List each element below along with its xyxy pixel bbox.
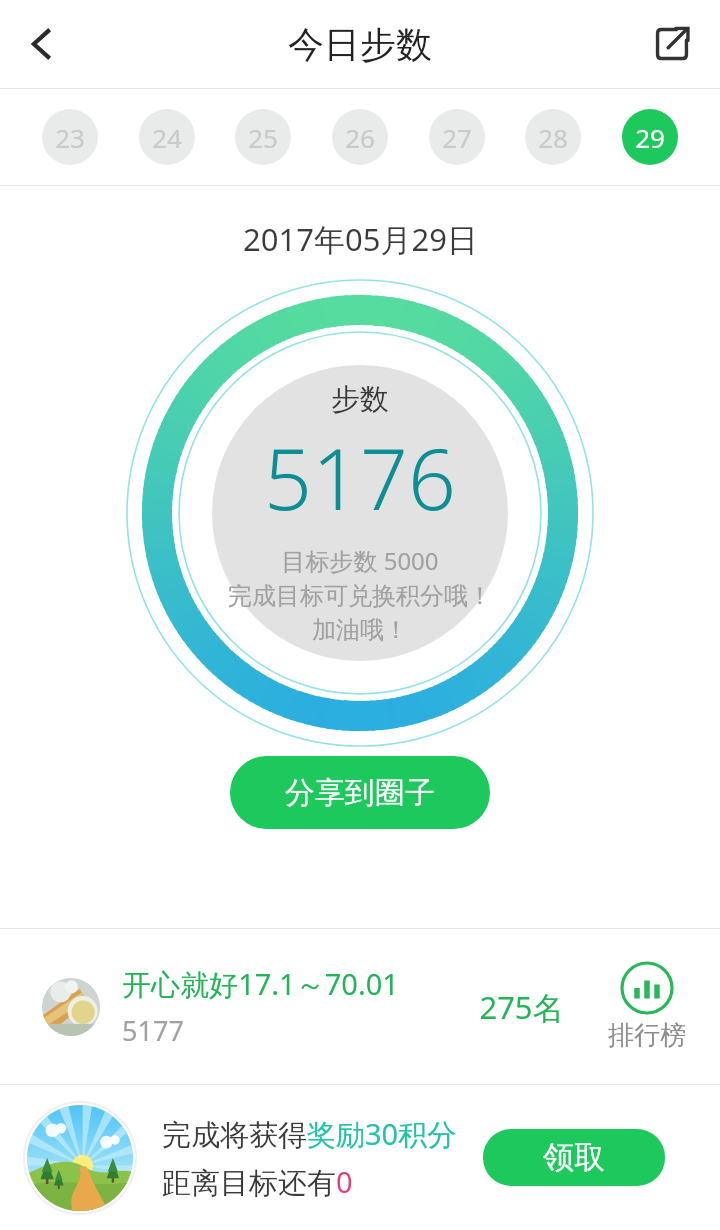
staticText: 5177 bbox=[122, 1012, 184, 1049]
button[interactable]: 开心就好17.1～70.01 bbox=[0, 929, 720, 1084]
button[interactable]: 28 bbox=[525, 109, 581, 165]
staticText: 24 bbox=[152, 120, 182, 155]
staticText: 23 bbox=[55, 120, 85, 155]
staticText: 加油哦！ bbox=[312, 615, 408, 645]
staticText: 26 bbox=[345, 120, 375, 155]
staticText: 今日步数 bbox=[288, 22, 432, 67]
staticText: 步数 bbox=[331, 381, 389, 418]
staticText: 5176 bbox=[264, 420, 456, 534]
staticText: 27 bbox=[442, 120, 472, 155]
button[interactable]: 23 bbox=[42, 109, 98, 165]
staticText: 完成将获得奖励30积分 bbox=[162, 1114, 457, 1154]
button[interactable]: 26 bbox=[332, 109, 388, 165]
button[interactable]: Back bbox=[6, 8, 78, 80]
staticText: 排行榜 bbox=[608, 1019, 686, 1052]
staticText: 完成目标可兑换积分哦！ bbox=[228, 581, 492, 611]
staticText: 领取 bbox=[543, 1138, 605, 1177]
staticText: 275名 bbox=[479, 986, 564, 1028]
staticText: 2017年05月29日 bbox=[243, 218, 478, 260]
staticText: 距离目标还有0 bbox=[162, 1162, 353, 1202]
staticText: 28 bbox=[538, 120, 568, 155]
button[interactable]: 领取 bbox=[483, 1129, 665, 1186]
staticText: 29 bbox=[635, 120, 665, 155]
button[interactable]: 排行榜 bbox=[604, 957, 690, 1056]
button[interactable]: Share bbox=[636, 8, 708, 80]
button[interactable]: 25 bbox=[235, 109, 291, 165]
button[interactable]: 27 bbox=[429, 109, 485, 165]
button[interactable]: 24 bbox=[139, 109, 195, 165]
staticText: 开心就好17.1～70.01 bbox=[122, 964, 399, 1004]
staticText: 分享到圈子 bbox=[285, 774, 435, 812]
button[interactable]: 分享到圈子 bbox=[230, 756, 490, 829]
staticText: 25 bbox=[248, 120, 278, 155]
staticText: 目标步数 5000 bbox=[281, 544, 439, 577]
button[interactable]: 29 bbox=[622, 109, 678, 165]
